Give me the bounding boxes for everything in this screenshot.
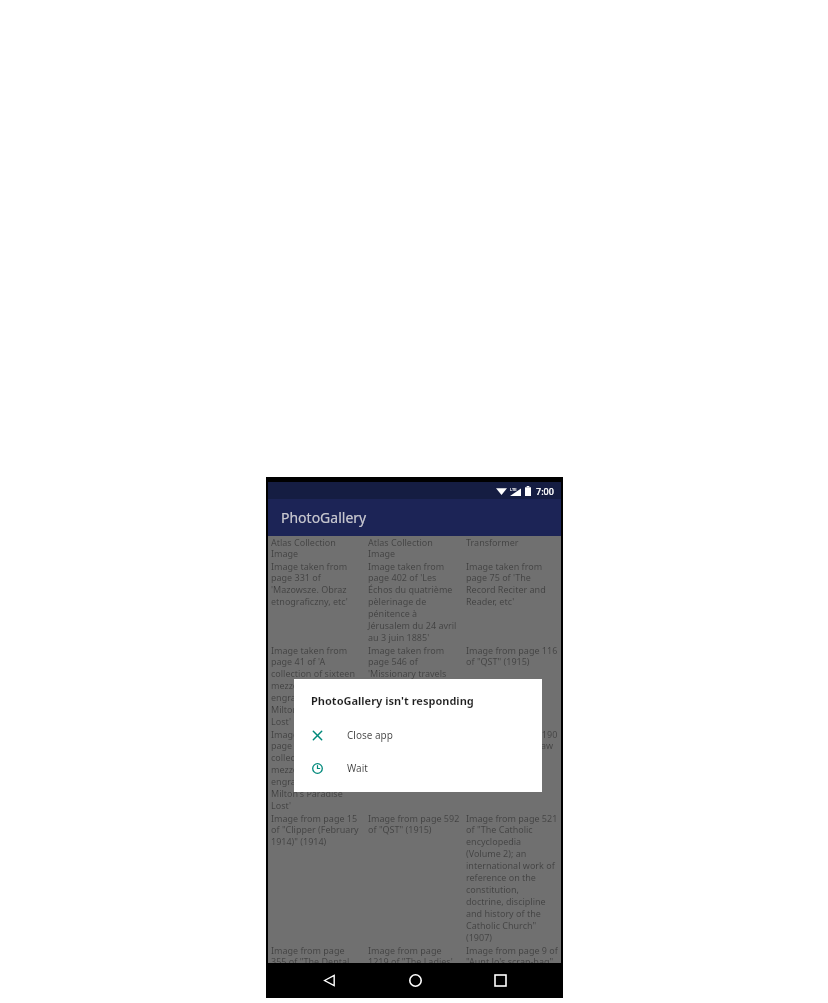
button[interactable]: Image from page 116 of "QST" (1915) [463, 644, 561, 668]
button[interactable]: Image taken from page 41 of 'A collectio… [268, 644, 365, 728]
button[interactable]: Image from page 1219 of "The Ladies' hom… [365, 944, 463, 963]
staticText: Transformer [466, 536, 519, 548]
button[interactable]: Image from page 355 of "The Dental cosmo… [268, 944, 365, 963]
staticText: Image from page 355 of "The Dental cosmo… [271, 944, 362, 963]
button[interactable]: Image taken from page 402 of 'Les Échos … [365, 560, 463, 644]
staticText: Image from page 521 of "The Catholic enc… [466, 812, 558, 944]
button[interactable]: Image taken from page 41 of 'A collectio… [268, 728, 365, 812]
button[interactable]: Image taken from page 331 of 'Mazowsze. … [268, 560, 365, 608]
button[interactable]: Transformer [463, 536, 561, 548]
button[interactable]: Atlas Collection Image [268, 536, 365, 560]
staticText: Image from page 190 of "New England law … [466, 728, 558, 764]
staticText: Image taken from page 402 of 'Les Échos … [368, 560, 460, 644]
staticText: Image from page 1219 of "The Ladies' hom… [368, 944, 460, 963]
other: Close app [312, 730, 323, 741]
staticText: PhotoGallery [281, 508, 367, 527]
button[interactable]: Image from page 15 of "Clipper (February… [268, 812, 365, 848]
staticText: Image from page 9 of "Aunt Jo's scrap-ba… [466, 944, 558, 963]
staticText: Image from page 116 of "QST" (1915) [466, 644, 558, 668]
button[interactable]: Recents [478, 963, 522, 998]
staticText: Image from page 592 of "QST" (1915) [368, 812, 460, 836]
staticText: 7:00 [536, 485, 554, 497]
button[interactable]: Image from page 592 of "QST" (1915) [365, 812, 463, 836]
staticText: Image taken from page 41 of 'A collectio… [271, 644, 362, 728]
other: Wait [312, 763, 323, 774]
button[interactable]: Home [393, 963, 437, 998]
staticText: PhotoGallery isn't responding [311, 693, 474, 708]
button[interactable]: Close app [294, 723, 542, 747]
staticText: LTE [510, 487, 517, 492]
staticText: Image taken from page 41 of 'A collectio… [271, 728, 362, 812]
button[interactable]: Back [307, 963, 351, 998]
staticText: Close app [347, 728, 393, 742]
button[interactable]: Wait [294, 756, 542, 780]
button[interactable]: Image taken from page 546 of 'Missionary… [365, 728, 463, 788]
staticText: Image taken from page 75 of 'The Record … [466, 560, 558, 608]
staticText: Image from page 15 of "Clipper (February… [271, 812, 362, 848]
staticText: Atlas Collection Image [271, 536, 362, 560]
staticText: Wait [347, 761, 368, 775]
button[interactable]: PhotoGallery isn't responding [294, 679, 542, 792]
staticText: Atlas Collection Image [368, 536, 460, 560]
button[interactable]: Image from page 190 of "New England law … [463, 728, 561, 764]
button[interactable]: Image taken from page 75 of 'The Record … [463, 560, 561, 608]
staticText: Image taken from page 546 of 'Missionary… [368, 728, 460, 788]
button[interactable]: Image from page 9 of "Aunt Jo's scrap-ba… [463, 944, 561, 963]
button[interactable]: Image taken from page 546 of 'Missionary… [365, 644, 463, 704]
staticText: Image taken from page 331 of 'Mazowsze. … [271, 560, 362, 608]
button[interactable]: PhotoGallery [268, 499, 561, 536]
button[interactable]: Image from page 521 of "The Catholic enc… [463, 812, 561, 944]
staticText: Image taken from page 546 of 'Missionary… [368, 644, 460, 704]
button[interactable]: Atlas Collection Image [365, 536, 463, 560]
